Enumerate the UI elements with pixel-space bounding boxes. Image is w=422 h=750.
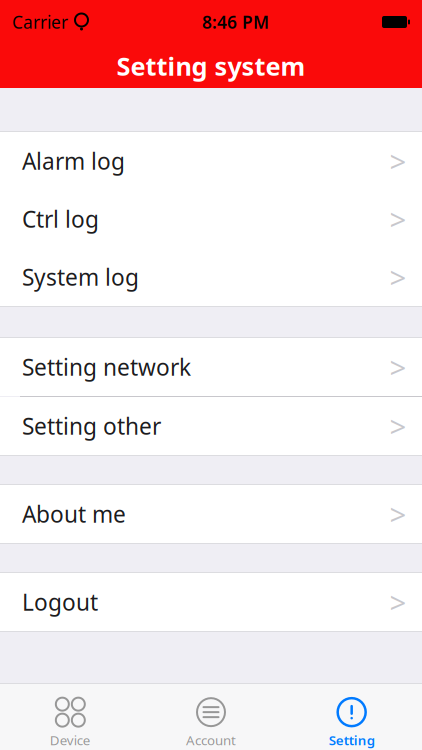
button[interactable]: Account	[141, 684, 281, 750]
staticText: About me	[22, 499, 126, 529]
button[interactable]: Setting	[281, 684, 422, 750]
staticText: >	[389, 199, 406, 238]
staticText: Setting system	[116, 49, 305, 83]
button[interactable]: Ctrl log	[0, 190, 422, 248]
staticText: >	[389, 582, 406, 621]
staticText: Setting other	[22, 411, 161, 441]
staticText: >	[389, 494, 406, 533]
staticText: Carrier	[12, 10, 68, 33]
button[interactable]: About me	[0, 485, 422, 543]
staticText: >	[389, 406, 406, 445]
button[interactable]: Setting network	[0, 338, 422, 396]
button[interactable]: System log	[0, 248, 422, 306]
staticText: Setting	[329, 731, 375, 749]
button[interactable]: Logout	[0, 573, 422, 631]
staticText: Ctrl log	[22, 204, 99, 234]
staticText: Setting network	[22, 352, 191, 382]
staticText: 8:46 PM	[202, 10, 269, 33]
button[interactable]: Device	[0, 684, 141, 750]
staticText: >	[389, 141, 406, 180]
staticText: System log	[22, 262, 139, 292]
staticText: Device	[50, 731, 91, 749]
button[interactable]: Setting other	[0, 397, 422, 455]
staticText: Alarm log	[22, 146, 125, 176]
staticText: >	[389, 347, 406, 386]
button[interactable]: Alarm log	[0, 132, 422, 190]
staticText: Account	[186, 731, 236, 749]
staticText: Logout	[22, 587, 98, 617]
staticText: >	[389, 257, 406, 296]
